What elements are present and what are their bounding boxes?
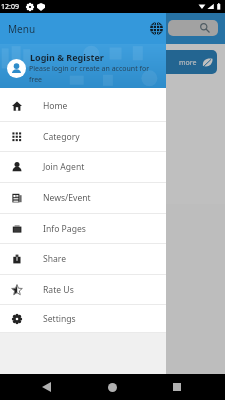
button[interactable]: Share [0, 244, 166, 274]
button[interactable]: News/Event [0, 183, 166, 213]
button[interactable]: Login & Register [0, 44, 166, 88]
staticText: Join Agent [43, 161, 85, 173]
button[interactable]: Search [168, 20, 218, 36]
button[interactable]: Category [0, 122, 166, 151]
staticText: Login & Register [30, 51, 104, 63]
button[interactable]: Info Pages [0, 214, 166, 243]
staticText: Home [43, 100, 68, 112]
button[interactable]: Home [0, 91, 166, 121]
staticText: Settings [43, 313, 76, 325]
staticText: Share [43, 253, 67, 265]
staticText: News/Event [43, 192, 91, 204]
staticText: more [179, 58, 197, 68]
button[interactable]: Rate Us [0, 275, 166, 304]
staticText: Rate Us [43, 284, 74, 296]
button[interactable]: Language [148, 20, 165, 37]
button[interactable]: more [0, 50, 217, 74]
staticText: 12:09 [1, 2, 19, 12]
staticText: Info Pages [43, 223, 86, 235]
button[interactable]: Recents [166, 376, 188, 398]
staticText: Please login or create an account for fr… [29, 64, 163, 85]
button[interactable]: Home [101, 376, 123, 398]
button[interactable]: Settings [0, 305, 166, 332]
button[interactable]: Join Agent [0, 152, 166, 182]
button[interactable]: Back [35, 376, 57, 398]
staticText: Category [43, 131, 80, 143]
staticText: Menu [8, 22, 36, 36]
